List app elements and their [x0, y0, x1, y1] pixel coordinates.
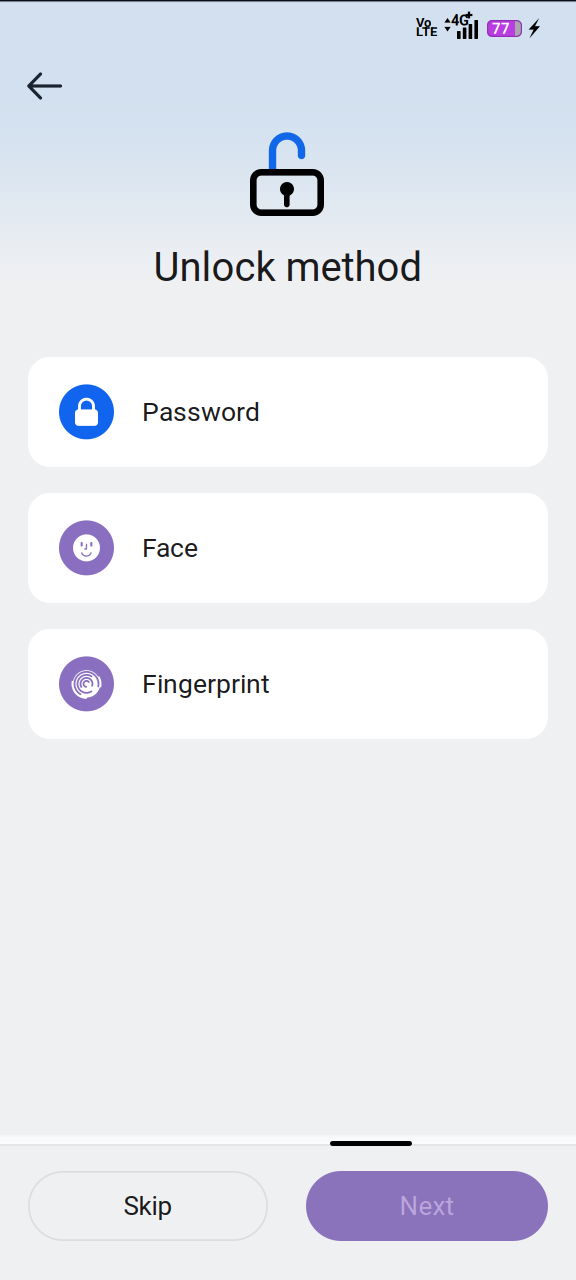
- staticText: Password: [142, 396, 260, 427]
- button[interactable]: Fingerprint: [28, 629, 548, 739]
- button[interactable]: Password: [28, 357, 548, 467]
- staticText: Face: [142, 532, 198, 563]
- button[interactable]: Face: [28, 493, 548, 603]
- button[interactable]: Skip: [28, 1171, 268, 1241]
- staticText: Unlock method: [153, 244, 422, 291]
- staticText: Fingerprint: [142, 668, 270, 699]
- staticText: Skip: [123, 1191, 172, 1221]
- staticText: Vo: [416, 15, 431, 30]
- staticText: Next: [399, 1191, 454, 1221]
- staticText: 4G: [451, 12, 469, 29]
- staticText: LTE: [416, 24, 437, 39]
- button[interactable]: Back: [0, 50, 63, 122]
- staticText: 77: [492, 20, 510, 37]
- button[interactable]: Next: [306, 1171, 548, 1241]
